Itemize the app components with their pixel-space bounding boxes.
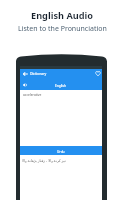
other: Play English audio: [23, 83, 27, 87]
staticText: English: [55, 84, 67, 88]
staticText: تیز کرنے والا ، رفتار بڑھانے والا: [22, 158, 66, 163]
staticText: accelerative: [23, 92, 42, 96]
other: Back: [23, 72, 28, 76]
staticText: English Audio: [31, 9, 94, 22]
staticText: Dictionary: [30, 71, 47, 76]
button[interactable]: Urdu: [20, 146, 102, 155]
staticText: Urdu: [57, 150, 65, 154]
staticText: Listen to the Pronunciation: [18, 24, 107, 34]
other: Favorite: [95, 71, 101, 76]
button[interactable]: Play English audio: [20, 78, 102, 90]
button[interactable]: Back: [20, 69, 102, 78]
